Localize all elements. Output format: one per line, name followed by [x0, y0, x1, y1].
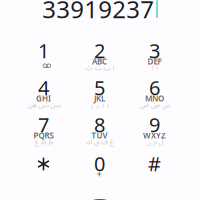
staticText: # — [148, 150, 161, 177]
button[interactable]: 6 — [125, 70, 183, 114]
button[interactable]: 2 — [70, 33, 128, 77]
button[interactable]: 4 — [14, 70, 72, 114]
staticText: 6 — [149, 74, 160, 101]
staticText: 3 — [149, 37, 160, 64]
staticText: سن شن هن — [27, 98, 60, 112]
staticText: TUV — [91, 130, 107, 141]
staticText: ا ب ت ث — [85, 61, 114, 75]
staticText: 9 — [149, 111, 160, 138]
staticText: WXYZ — [143, 130, 166, 141]
button[interactable]: 9 — [125, 107, 183, 151]
button[interactable]: 7 — [14, 107, 72, 151]
staticText: 33919237 — [42, 0, 154, 25]
staticText: 1 — [38, 37, 49, 64]
staticText: 7 — [38, 111, 49, 138]
staticText: ا ا — [151, 61, 157, 75]
button[interactable]: 5 — [70, 70, 128, 114]
staticText: ل م ن — [146, 135, 163, 149]
button[interactable]: 8 — [70, 107, 128, 151]
button[interactable]: 0 — [70, 146, 128, 190]
staticText: + — [97, 169, 102, 180]
staticText: ABC — [92, 56, 107, 67]
staticText: DEF — [147, 56, 161, 67]
staticText: 2 — [94, 37, 105, 64]
staticText: 8 — [94, 111, 105, 138]
staticText: GHI — [36, 93, 51, 104]
staticText: د ذ ر ز — [90, 98, 108, 112]
staticText: غ ف ق ك — [85, 135, 113, 149]
button[interactable]: # — [125, 146, 183, 190]
staticText: 0 — [94, 150, 105, 177]
staticText: MNO — [145, 93, 164, 104]
staticText: 5 — [94, 74, 105, 101]
staticText: 4 — [38, 74, 49, 101]
staticText: PQRS — [33, 130, 53, 141]
button[interactable]: 1 — [14, 33, 72, 77]
staticText: ط ظ ع — [34, 135, 52, 149]
button[interactable]: 3 — [125, 33, 183, 77]
staticText: ش ص ض — [139, 98, 169, 112]
button[interactable] — [14, 146, 72, 190]
staticText: JKL — [94, 93, 105, 104]
